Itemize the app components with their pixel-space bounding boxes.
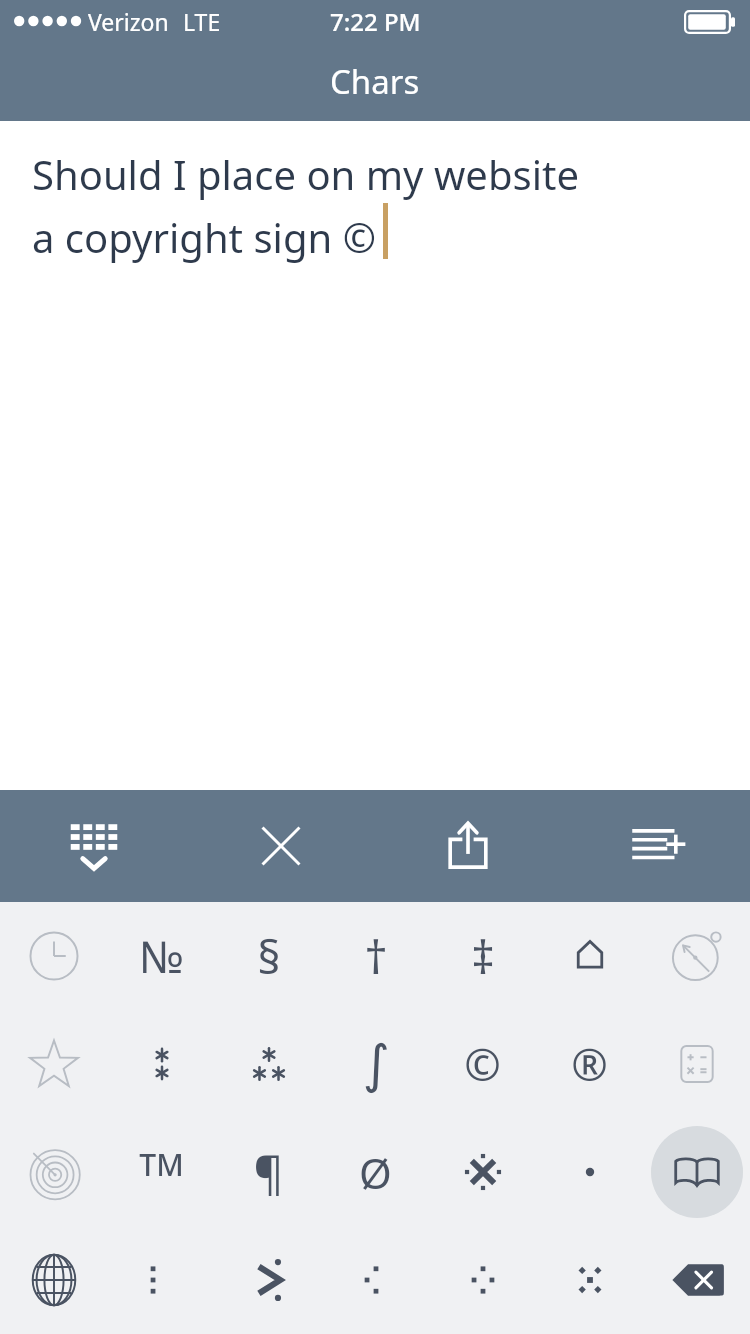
other: Home: [544, 910, 636, 1002]
staticText: ©: [464, 1034, 501, 1094]
other: Triple asterisk: [223, 1018, 315, 1110]
button[interactable]: Ø: [322, 1118, 429, 1226]
other: Star: [8, 1018, 100, 1110]
staticText: LTE: [183, 6, 221, 37]
other: Braille C: [544, 1234, 636, 1326]
button[interactable]: TM: [108, 1118, 215, 1226]
staticText: a copyright sign ©: [32, 210, 376, 264]
staticText: №: [139, 926, 184, 986]
other: Asterism: [437, 1126, 529, 1218]
other: Bullet: [544, 1126, 636, 1218]
button[interactable]: Hide keyboard: [0, 790, 187, 902]
other: Braille A: [330, 1234, 422, 1326]
button[interactable]: Double asterisk: [108, 1010, 215, 1118]
other: Backspace: [651, 1234, 743, 1326]
other: Calculator: [651, 1018, 743, 1110]
other: Much greater than: [223, 1234, 315, 1326]
staticText: Should I place on my website: [32, 147, 579, 201]
button[interactable]: ‡: [429, 902, 536, 1010]
other: Braille B: [437, 1234, 529, 1326]
button[interactable]: Close: [187, 790, 374, 902]
button[interactable]: Share: [374, 790, 562, 902]
other: Double asterisk: [116, 1018, 208, 1110]
other: Compass: [651, 910, 743, 1002]
button[interactable]: Clock: [0, 902, 108, 1010]
button[interactable]: Home: [536, 902, 643, 1010]
button[interactable]: ∫: [322, 1010, 429, 1118]
button[interactable]: Much greater than: [215, 1226, 322, 1334]
button[interactable]: ©: [429, 1010, 536, 1118]
staticText: ¶: [253, 1141, 284, 1204]
staticText: ‡: [471, 925, 495, 988]
staticText: ®: [571, 1034, 608, 1094]
button[interactable]: Dictionary: [643, 1118, 750, 1226]
button[interactable]: Braille C: [536, 1226, 643, 1334]
staticText: 7:22 PM: [330, 5, 421, 38]
other: Target: [8, 1126, 100, 1218]
other: Globe: [8, 1234, 100, 1326]
button[interactable]: Vertical dots: [108, 1226, 215, 1334]
button[interactable]: Calculator: [643, 1010, 750, 1118]
staticText: †: [364, 925, 388, 988]
button[interactable]: ®: [536, 1010, 643, 1118]
button[interactable]: №: [108, 902, 215, 1010]
staticText: §: [257, 925, 281, 988]
button[interactable]: Braille B: [429, 1226, 536, 1334]
button[interactable]: Bullet: [536, 1118, 643, 1226]
button[interactable]: †: [322, 902, 429, 1010]
button[interactable]: Braille A: [322, 1226, 429, 1334]
staticText: TM: [139, 1144, 184, 1185]
button[interactable]: Globe: [0, 1226, 108, 1334]
staticText: Ø: [359, 1144, 392, 1201]
staticText: ∫: [362, 1034, 390, 1095]
button[interactable]: ¶: [215, 1118, 322, 1226]
button[interactable]: Compass: [643, 902, 750, 1010]
button[interactable]: Add to list: [562, 790, 750, 902]
button[interactable]: Asterism: [429, 1118, 536, 1226]
button[interactable]: Star: [0, 1010, 108, 1118]
button[interactable]: Backspace: [643, 1226, 750, 1334]
other: Vertical dots: [116, 1234, 208, 1326]
button[interactable]: Target: [0, 1118, 108, 1226]
button[interactable]: §: [215, 902, 322, 1010]
button[interactable]: Triple asterisk: [215, 1010, 322, 1118]
other: Clock: [8, 910, 100, 1002]
staticText: Verizon: [88, 6, 169, 37]
other: Dictionary: [651, 1126, 743, 1218]
staticText: Chars: [330, 59, 420, 104]
